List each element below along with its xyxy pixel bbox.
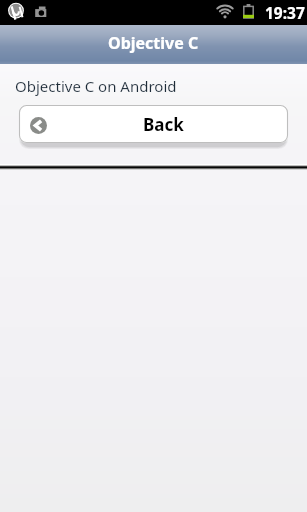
button[interactable]: Back	[19, 105, 288, 146]
staticText: Objective C	[108, 32, 199, 54]
staticText: 19:37	[265, 2, 305, 23]
staticText: Objective C on Android	[15, 76, 177, 96]
staticText: Back	[143, 113, 184, 136]
